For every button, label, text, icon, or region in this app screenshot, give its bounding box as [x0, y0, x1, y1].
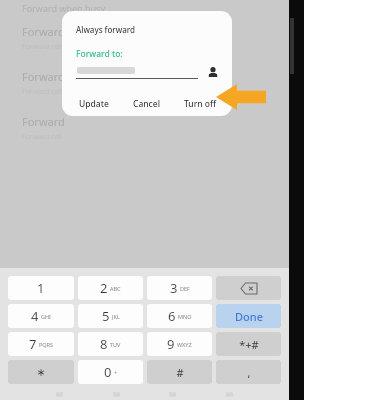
button[interactable]: Cancel — [130, 94, 163, 114]
staticText: DEF — [180, 285, 190, 292]
staticText: GHI — [41, 313, 51, 320]
staticText: 6 — [168, 307, 176, 325]
staticText: *+# — [239, 337, 259, 352]
staticText: 8 — [100, 335, 108, 353]
staticText: 5 — [102, 307, 110, 325]
button[interactable]: , — [216, 360, 281, 384]
staticText: 7 — [29, 335, 37, 353]
button[interactable]: Nav — [168, 390, 177, 399]
button[interactable]: Backspace — [216, 276, 281, 300]
button[interactable]: 1 — [8, 276, 74, 300]
button[interactable]: 8 — [78, 332, 143, 356]
button[interactable]: Nav — [55, 390, 64, 399]
button[interactable]: Nav — [225, 390, 234, 399]
button[interactable]: Done — [216, 304, 281, 328]
staticText: MNO — [178, 313, 192, 320]
staticText: 9 — [167, 335, 175, 353]
button[interactable]: 2 — [78, 276, 143, 300]
button[interactable]: # — [147, 360, 212, 384]
button[interactable]: Nav — [112, 390, 121, 399]
button[interactable]: 3 — [147, 276, 212, 300]
staticText: Turn off — [184, 98, 217, 110]
button[interactable]: 7 — [8, 332, 74, 356]
staticText: 4 — [31, 307, 39, 325]
button[interactable]: Update — [76, 94, 112, 114]
staticText: Forward when busy — [22, 2, 105, 14]
button[interactable]: Pick contact — [206, 65, 220, 79]
staticText: # — [176, 365, 184, 380]
staticText: WXYZ — [177, 341, 192, 348]
button[interactable]: 4 — [8, 304, 74, 328]
staticText: PQRS — [39, 341, 54, 348]
staticText: 1 — [37, 279, 45, 297]
staticText: Always forward — [76, 24, 135, 35]
staticText: , — [247, 365, 251, 380]
button[interactable]: 0 — [78, 360, 143, 384]
button[interactable]: 5 — [78, 304, 143, 328]
staticText: 3 — [170, 279, 178, 297]
staticText: Update — [79, 98, 109, 110]
button[interactable]: 6 — [147, 304, 212, 328]
staticText: 2 — [100, 279, 108, 297]
button[interactable]: 9 — [147, 332, 212, 356]
button[interactable]: Turn off — [181, 94, 220, 114]
staticText: JKL — [112, 313, 120, 320]
staticText: Cancel — [133, 98, 160, 110]
button[interactable]: ∗ — [8, 360, 74, 384]
staticText: Forward — [22, 24, 65, 39]
staticText: TUV — [110, 341, 121, 348]
staticText: Forward to: — [76, 48, 123, 60]
staticText: Forward — [22, 114, 65, 129]
button[interactable]: *+# — [216, 332, 281, 356]
staticText: + — [114, 369, 118, 376]
staticText: ∗ — [36, 366, 46, 379]
staticText: Forward — [22, 69, 65, 84]
staticText: ABC — [110, 285, 121, 292]
staticText: Done — [235, 309, 263, 324]
staticText: 0 — [104, 363, 112, 381]
